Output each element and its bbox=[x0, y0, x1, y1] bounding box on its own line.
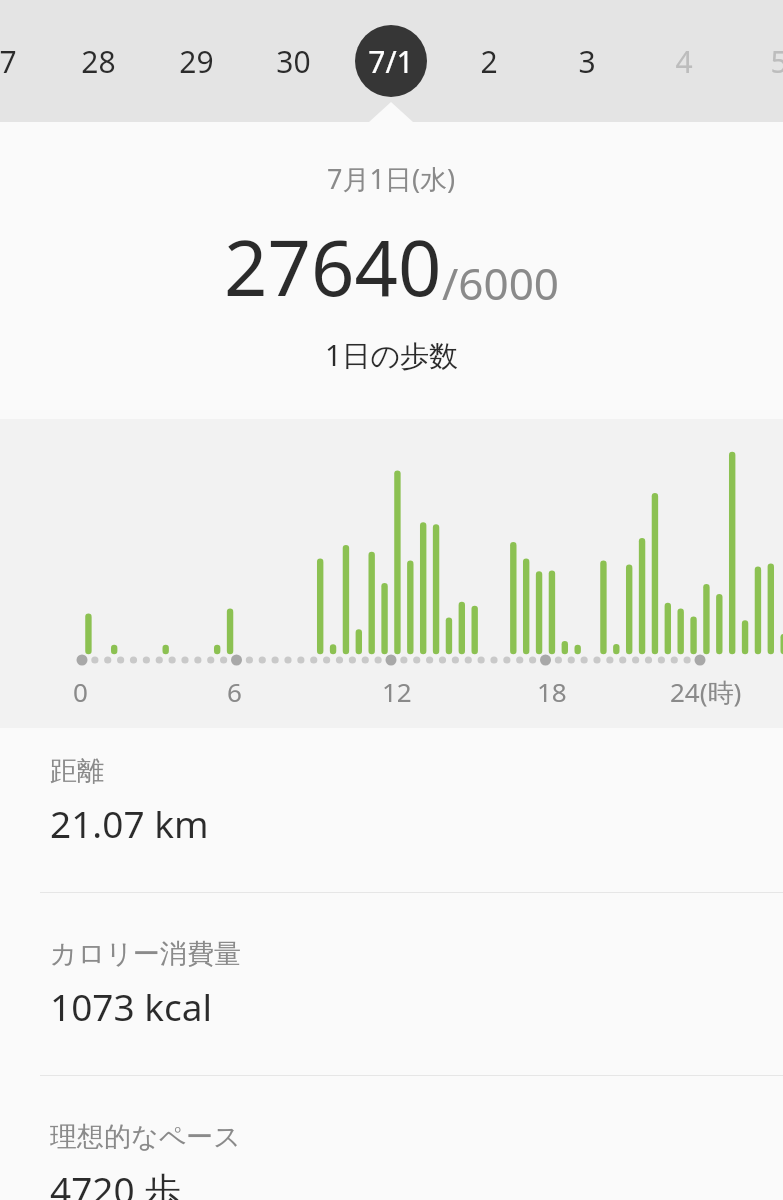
button[interactable]: カロリー消費量 bbox=[0, 892, 783, 1075]
button[interactable]: 2 bbox=[453, 25, 525, 97]
staticText: 1073 kcal bbox=[50, 981, 213, 1031]
staticText: 7 bbox=[0, 41, 17, 82]
staticText: 21.07 km bbox=[50, 798, 209, 848]
staticText: 27640 bbox=[224, 215, 442, 319]
button[interactable]: 30 bbox=[257, 25, 329, 97]
staticText: 6 bbox=[227, 674, 242, 709]
button[interactable]: 7/1 bbox=[355, 25, 427, 97]
button[interactable]: 3 bbox=[551, 25, 623, 97]
staticText: 29 bbox=[179, 41, 214, 82]
staticText: カロリー消費量 bbox=[50, 937, 241, 971]
button[interactable]: 28 bbox=[62, 25, 134, 97]
staticText: 30 bbox=[276, 41, 311, 82]
staticText: 2 bbox=[480, 41, 498, 82]
staticText: 5 bbox=[770, 41, 783, 82]
staticText: 4 bbox=[675, 41, 693, 82]
button[interactable]: 5 bbox=[743, 25, 783, 97]
staticText: 18 bbox=[537, 674, 567, 709]
staticText: 24(時) bbox=[670, 674, 742, 710]
staticText: 7/1 bbox=[368, 41, 414, 82]
staticText: 12 bbox=[382, 674, 412, 709]
staticText: 0 bbox=[73, 674, 88, 709]
staticText: 28 bbox=[81, 41, 116, 82]
staticText: 1日の歩数 bbox=[325, 335, 459, 375]
button[interactable]: 1日の歩数グラフ bbox=[0, 419, 783, 728]
button[interactable]: 29 bbox=[160, 25, 232, 97]
staticText: 距離 bbox=[50, 754, 104, 788]
button[interactable]: 7 bbox=[0, 25, 44, 97]
staticText: 3 bbox=[578, 41, 596, 82]
button[interactable]: 4 bbox=[648, 25, 720, 97]
button[interactable]: 理想的なペース bbox=[0, 1075, 783, 1200]
button[interactable]: 距離 bbox=[0, 754, 783, 892]
staticText: 理想的なペース bbox=[50, 1120, 241, 1154]
staticText: /6000 bbox=[442, 253, 560, 313]
staticText: 4720 歩 bbox=[50, 1164, 182, 1200]
staticText: 7月1日(水) bbox=[327, 160, 456, 197]
